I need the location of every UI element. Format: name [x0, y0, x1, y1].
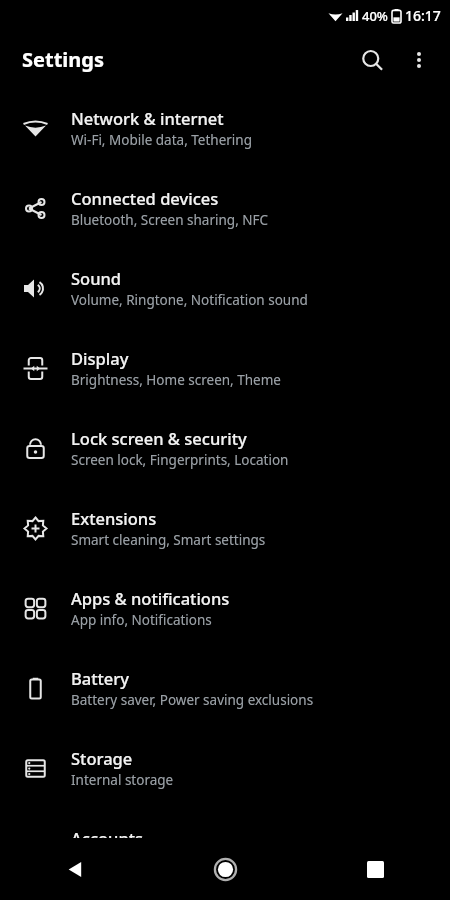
- button[interactable]: Connected devices: [0, 168, 450, 248]
- staticText: Google, Samsung account: [71, 851, 237, 869]
- button[interactable]: Search: [348, 36, 396, 84]
- staticText: 40%: [362, 7, 388, 25]
- button[interactable]: Sound: [0, 248, 450, 328]
- staticText: App info, Notifications: [71, 611, 212, 629]
- staticText: Sound: [71, 267, 122, 289]
- button[interactable]: Accounts: [0, 808, 450, 888]
- staticText: Lock screen & security: [71, 427, 247, 449]
- button[interactable]: Extensions: [0, 488, 450, 568]
- staticText: Settings: [22, 46, 104, 73]
- staticText: Screen lock, Fingerprints, Location: [71, 451, 289, 469]
- staticText: Brightness, Home screen, Theme: [71, 371, 281, 389]
- staticText: Accounts: [71, 827, 144, 849]
- staticText: Bluetooth, Screen sharing, NFC: [71, 211, 269, 229]
- staticText: 16:17: [405, 6, 441, 25]
- staticText: Network & internet: [71, 107, 224, 129]
- button[interactable]: Recent apps: [300, 838, 450, 900]
- staticText: Storage: [71, 747, 133, 769]
- button[interactable]: Storage: [0, 728, 450, 808]
- staticText: Battery: [71, 667, 130, 689]
- staticText: Display: [71, 347, 129, 369]
- button[interactable]: Lock screen & security: [0, 408, 450, 488]
- button[interactable]: Home: [150, 838, 300, 900]
- staticText: Connected devices: [71, 187, 219, 209]
- staticText: Apps & notifications: [71, 587, 230, 609]
- button[interactable]: Display: [0, 328, 450, 408]
- staticText: Battery saver, Power saving exclusions: [71, 691, 314, 709]
- button[interactable]: Apps & notifications: [0, 568, 450, 648]
- button[interactable]: More options: [396, 37, 442, 83]
- staticText: Smart cleaning, Smart settings: [71, 531, 266, 549]
- button[interactable]: Battery: [0, 648, 450, 728]
- button[interactable]: Back: [0, 838, 150, 900]
- button[interactable]: Network & internet: [0, 88, 450, 168]
- staticText: Extensions: [71, 507, 157, 529]
- staticText: Internal storage: [71, 771, 174, 789]
- staticText: Volume, Ringtone, Notification sound: [71, 291, 308, 309]
- staticText: Wi-Fi, Mobile data, Tethering: [71, 131, 252, 149]
